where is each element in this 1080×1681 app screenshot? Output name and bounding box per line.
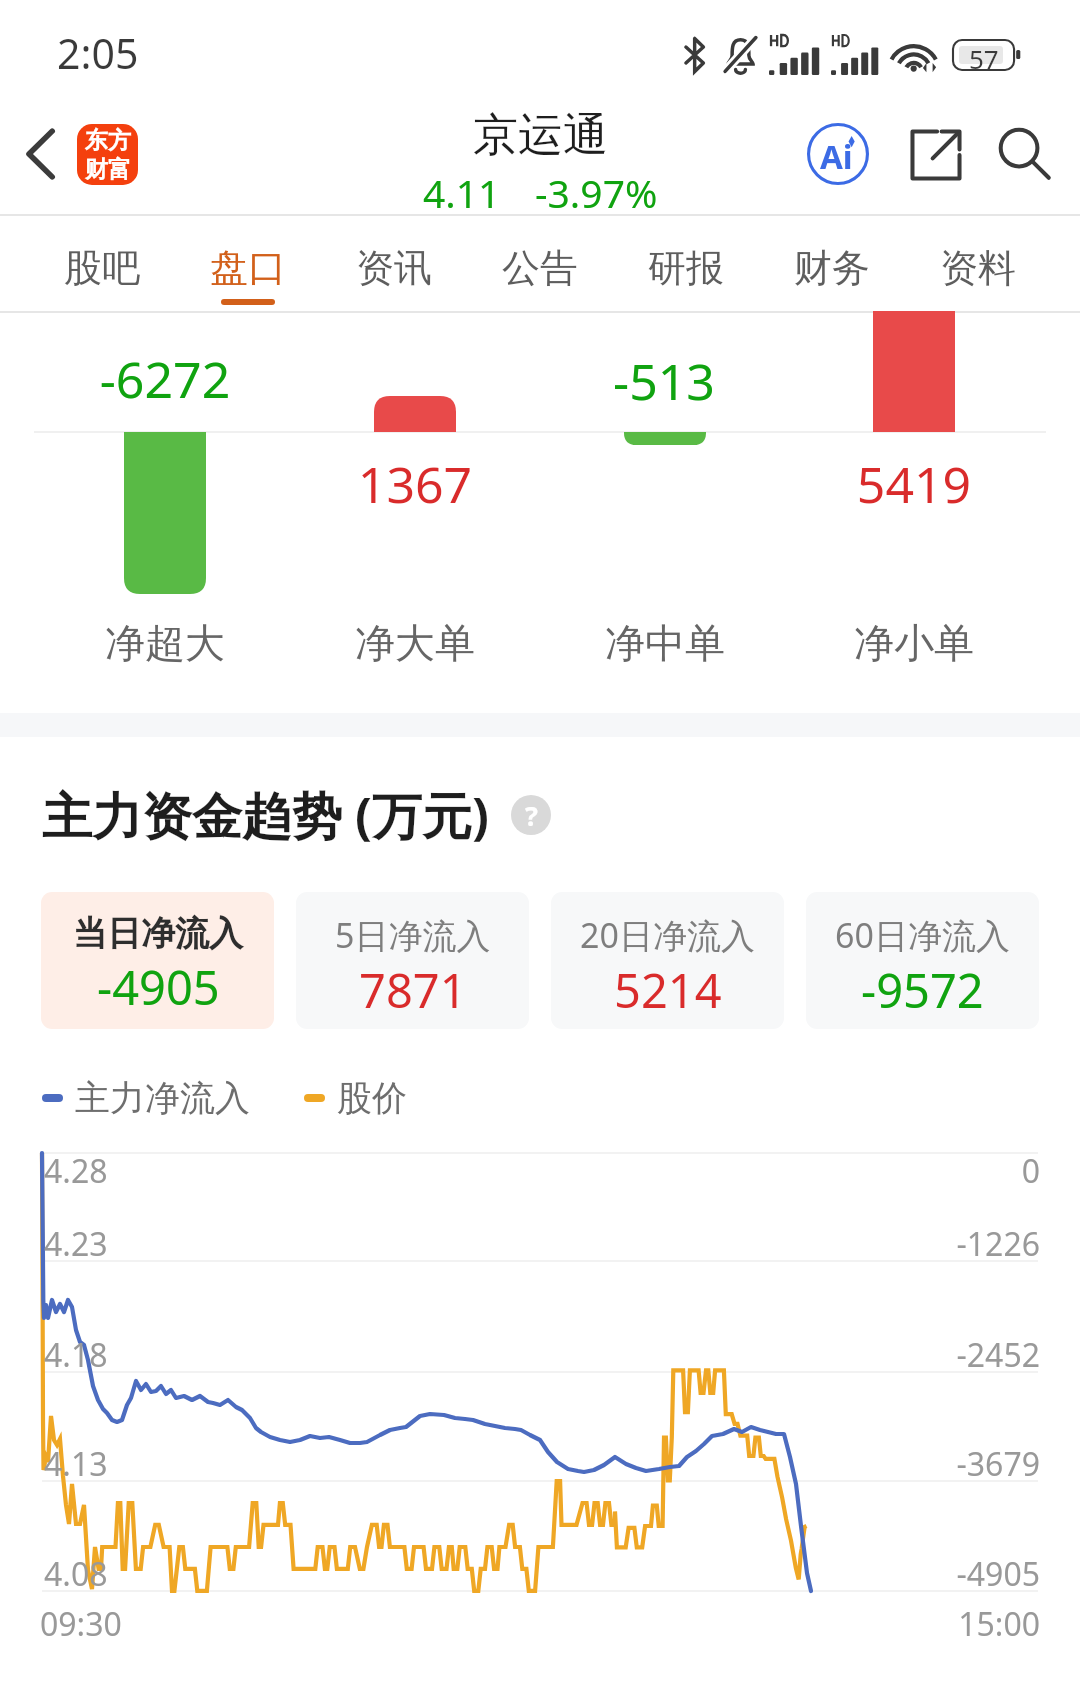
staticText: 5419 bbox=[794, 450, 1034, 518]
staticText: -513 bbox=[544, 347, 784, 415]
staticText: 资料 bbox=[940, 244, 1016, 292]
staticText: 60日净流入 bbox=[835, 912, 1010, 958]
button[interactable]: 当日净流入 bbox=[41, 892, 274, 1029]
staticText: 5日净流入 bbox=[335, 912, 491, 958]
staticText: 7871 bbox=[359, 958, 467, 1022]
button[interactable]: East Money logo bbox=[77, 124, 138, 185]
staticText: 资讯 bbox=[356, 244, 432, 292]
staticText: 4.13 bbox=[44, 1442, 108, 1486]
staticText: -1226 bbox=[740, 1222, 1040, 1266]
staticText: 净中单 bbox=[545, 618, 785, 668]
staticText: 2:05 bbox=[57, 25, 139, 81]
button[interactable]: Share bbox=[888, 107, 983, 202]
staticText: -3679 bbox=[740, 1442, 1040, 1486]
staticText: 0 bbox=[740, 1149, 1040, 1193]
staticText: Ai bbox=[820, 134, 853, 179]
button[interactable]: 盘口 bbox=[175, 216, 321, 313]
staticText: 20日净流入 bbox=[580, 912, 755, 958]
staticText: -9572 bbox=[861, 958, 984, 1022]
button[interactable]: 股吧 bbox=[29, 216, 175, 313]
staticText: 盘口 bbox=[210, 244, 286, 292]
staticText: -2452 bbox=[740, 1333, 1040, 1377]
staticText: 财务 bbox=[794, 244, 870, 292]
button[interactable]: 公告 bbox=[467, 216, 613, 313]
staticText: 公告 bbox=[502, 244, 578, 292]
staticText: 57 bbox=[969, 41, 999, 71]
staticText: 4.23 bbox=[44, 1222, 108, 1266]
staticText: 主力净流入 bbox=[75, 1076, 250, 1120]
staticText: 财富 bbox=[85, 155, 131, 184]
staticText: 当日净流入 bbox=[73, 912, 243, 955]
staticText: 研报 bbox=[648, 244, 724, 292]
staticText: 15:00 bbox=[0, 1602, 1040, 1646]
staticText: 净小单 bbox=[794, 618, 1034, 668]
button[interactable]: 资讯 bbox=[321, 216, 467, 313]
staticText: 4.08 bbox=[44, 1552, 108, 1596]
staticText: -6272 bbox=[45, 345, 285, 413]
button[interactable]: 研报 bbox=[613, 216, 759, 313]
staticText: 净超大 bbox=[45, 618, 285, 668]
staticText: -3.97% bbox=[535, 166, 658, 219]
staticText: -4905 bbox=[97, 955, 220, 1019]
button[interactable]: 5日净流入 bbox=[296, 892, 529, 1029]
staticText: 4.28 bbox=[44, 1149, 108, 1193]
staticText: 股吧 bbox=[64, 244, 140, 292]
staticText: -4905 bbox=[740, 1552, 1040, 1596]
button[interactable]: 60日净流入 bbox=[806, 892, 1039, 1029]
button[interactable]: AI assistant bbox=[788, 104, 888, 204]
button[interactable]: Help bbox=[511, 795, 551, 835]
button[interactable]: 20日净流入 bbox=[551, 892, 784, 1029]
staticText: 京运通 bbox=[473, 107, 608, 164]
button[interactable]: 财务 bbox=[759, 216, 905, 313]
button[interactable]: Search bbox=[983, 112, 1067, 196]
button[interactable]: Back bbox=[4, 117, 78, 191]
staticText: 09:30 bbox=[40, 1602, 122, 1646]
staticText: 净大单 bbox=[295, 618, 535, 668]
staticText: 东方 bbox=[85, 126, 131, 155]
button[interactable]: 资料 bbox=[905, 216, 1051, 313]
staticText: 主力资金趋势 (万元) bbox=[42, 781, 489, 849]
staticText: 1367 bbox=[295, 450, 535, 518]
staticText: 股价 bbox=[337, 1076, 407, 1120]
staticText: ? bbox=[525, 797, 538, 834]
staticText: 4.11 bbox=[423, 166, 501, 219]
staticText: 4.18 bbox=[44, 1333, 108, 1377]
staticText: 5214 bbox=[614, 958, 722, 1022]
